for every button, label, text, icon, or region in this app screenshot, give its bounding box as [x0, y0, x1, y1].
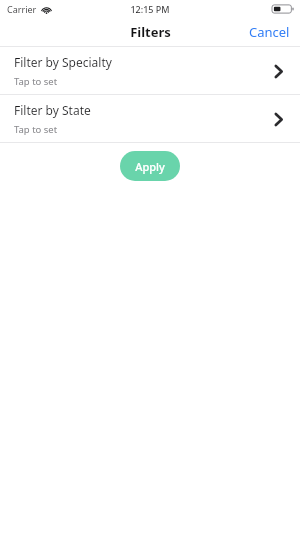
staticText: Filter by State [14, 102, 91, 118]
button[interactable]: Cancel [239, 19, 300, 45]
staticText: Apply [135, 159, 165, 174]
button[interactable]: Apply [120, 151, 180, 181]
button[interactable]: Filter by State [0, 95, 300, 142]
staticText: Tap to set [14, 75, 58, 88]
staticText: Tap to set [14, 123, 58, 136]
staticText: Filter by Specialty [14, 54, 112, 70]
button[interactable]: Filter by Specialty [0, 47, 300, 94]
staticText: Cancel [249, 23, 290, 41]
other: Open Filter by Specialty [268, 61, 288, 81]
staticText: 12:15 PM [130, 3, 170, 15]
staticText: Filters [130, 23, 171, 41]
other: Open Filter by State [268, 109, 288, 129]
staticText: Carrier [7, 3, 37, 15]
